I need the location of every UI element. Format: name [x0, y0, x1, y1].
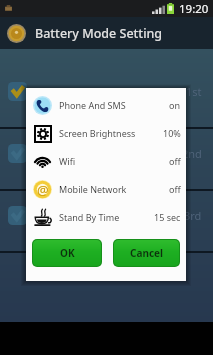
staticText: 10%: [163, 127, 181, 139]
button[interactable]: Stand By Time: [26, 203, 186, 231]
button[interactable]: Wifi: [26, 147, 186, 175]
staticText: OK: [60, 246, 75, 260]
button[interactable]: Phone And SMS: [26, 91, 186, 119]
staticText: off: [169, 155, 181, 167]
button[interactable]: 1st: [0, 67, 213, 127]
button[interactable]: [0, 253, 213, 313]
staticText: 2nd: [182, 146, 202, 161]
staticText: on: [169, 99, 181, 111]
button[interactable]: 2nd: [0, 129, 213, 189]
staticText: Mobile Network: [59, 183, 127, 195]
button[interactable]: App icon: [7, 24, 26, 43]
staticText: Screen Brightness: [59, 127, 136, 139]
staticText: Cancel: [130, 246, 164, 260]
button[interactable]: OK: [33, 240, 101, 266]
staticText: off: [169, 183, 181, 195]
button[interactable]: @: [26, 175, 186, 203]
staticText: Phone And SMS: [59, 99, 126, 111]
button[interactable]: Cancel: [114, 240, 179, 266]
staticText: @: [37, 181, 49, 199]
staticText: Stand By Time: [59, 211, 120, 223]
staticText: 19:20: [179, 1, 209, 17]
staticText: Battery Mode Setting: [35, 25, 163, 42]
staticText: 15 sec: [154, 211, 181, 223]
button[interactable]: 3rd: [0, 191, 213, 251]
button[interactable]: Screen Brightness: [26, 119, 186, 147]
staticText: 3rd: [184, 208, 202, 223]
staticText: 1st: [186, 84, 202, 99]
staticText: Wifi: [59, 155, 76, 167]
